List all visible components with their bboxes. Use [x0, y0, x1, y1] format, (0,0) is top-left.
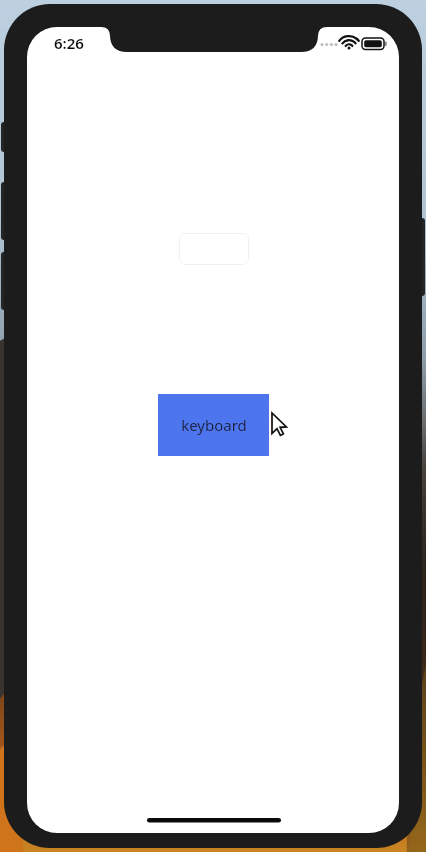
staticText: 6:26	[54, 33, 84, 53]
button[interactable]: keyboard	[158, 394, 269, 456]
button[interactable]: Empty field	[179, 233, 249, 265]
staticText: keyboard	[181, 415, 247, 435]
